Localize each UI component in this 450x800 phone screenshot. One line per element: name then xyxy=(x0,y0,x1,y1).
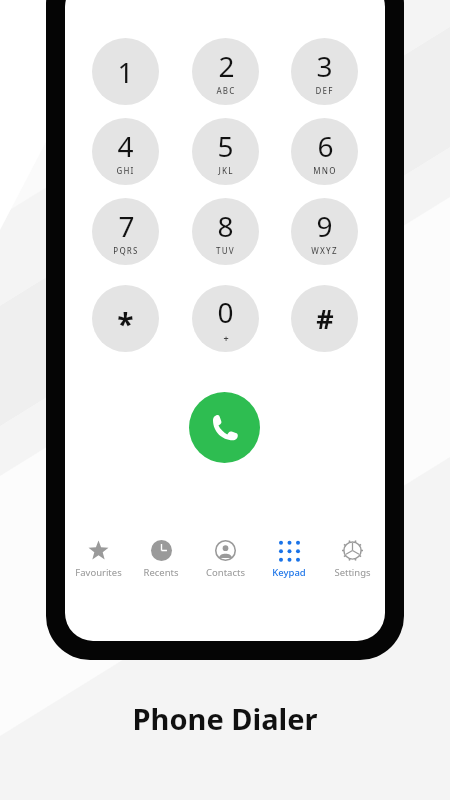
button[interactable]: 5 xyxy=(192,118,259,185)
staticText: Settings xyxy=(334,566,371,579)
button[interactable]: 2 xyxy=(192,38,259,105)
staticText: ABC xyxy=(216,85,236,96)
button[interactable]: Recents xyxy=(130,531,192,579)
staticText: 2 xyxy=(218,47,235,85)
staticText: # xyxy=(316,300,334,337)
staticText: JKL xyxy=(218,165,234,176)
button[interactable]: 4 xyxy=(92,118,159,185)
button[interactable]: Call xyxy=(189,392,260,463)
staticText: Phone Dialer xyxy=(0,699,450,738)
button[interactable]: Favourites xyxy=(67,531,129,579)
staticText: 6 xyxy=(317,127,334,165)
staticText: * xyxy=(117,303,134,344)
staticText: Recents xyxy=(143,566,179,579)
staticText: 7 xyxy=(118,207,135,245)
button[interactable]: 0 xyxy=(192,285,259,352)
staticText: 1 xyxy=(117,53,134,91)
button[interactable]: 6 xyxy=(291,118,358,185)
staticText: MNO xyxy=(313,165,337,176)
staticText: WXYZ xyxy=(311,245,338,256)
button[interactable]: 9 xyxy=(291,198,358,265)
staticText: DEF xyxy=(315,85,334,96)
staticText: + xyxy=(223,332,229,344)
button[interactable]: 3 xyxy=(291,38,358,105)
button[interactable]: * xyxy=(92,285,159,352)
button[interactable]: 8 xyxy=(192,198,259,265)
button[interactable]: Contacts xyxy=(194,531,256,579)
button[interactable]: Keypad xyxy=(258,531,320,579)
button[interactable]: 7 xyxy=(92,198,159,265)
staticText: 8 xyxy=(217,207,234,245)
staticText: 4 xyxy=(117,127,134,165)
staticText: Favourites xyxy=(75,566,122,579)
staticText: 9 xyxy=(316,207,333,245)
staticText: 5 xyxy=(217,127,234,165)
staticText: Keypad xyxy=(272,566,306,579)
staticText: TUV xyxy=(216,245,235,256)
button[interactable]: # xyxy=(291,285,358,352)
staticText: 0 xyxy=(217,293,234,331)
staticText: PQRS xyxy=(113,245,139,256)
staticText: GHI xyxy=(116,165,135,176)
staticText: 3 xyxy=(316,47,333,85)
staticText: Contacts xyxy=(206,566,245,579)
button[interactable]: Settings xyxy=(321,531,383,579)
button[interactable]: 1 xyxy=(92,38,159,105)
